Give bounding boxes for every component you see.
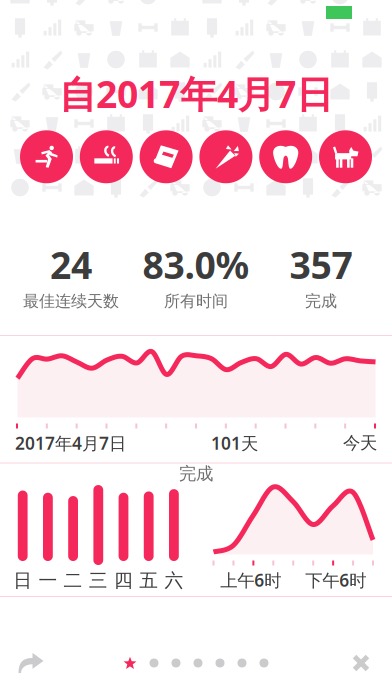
staticText: 六 [164,569,183,592]
staticText: 五 [139,569,158,592]
button[interactable]: Walk the dog [319,130,372,183]
staticText: 一 [38,569,57,592]
button[interactable]: Share [2,641,60,685]
staticText: 三 [89,569,108,592]
button[interactable]: Smoking [80,130,133,183]
staticText: 完成 [305,291,337,311]
staticText: 83.0% [142,240,249,289]
staticText: 上午6时 [220,568,281,591]
staticText: 二 [64,569,83,592]
button[interactable]: Reading [140,130,193,183]
staticText: 完成 [179,463,213,484]
button[interactable]: Eat healthy [199,130,252,183]
button[interactable]: Close [332,641,390,685]
button[interactable]: Brush teeth [259,130,312,183]
staticText: 四 [114,569,133,592]
staticText: 357 [289,240,352,289]
staticText: 101天 [211,431,258,454]
staticText: 日 [13,569,32,592]
staticText: 自2017年4月7日 [59,69,333,118]
staticText: 24 [50,240,92,289]
staticText: 下午6时 [305,568,366,591]
staticText: 2017年4月7日 [15,431,126,454]
button[interactable]: Exercise [20,130,73,183]
staticText: 所有时间 [164,291,228,311]
staticText: 今天 [343,432,377,454]
staticText: 最佳连续天数 [23,291,119,311]
